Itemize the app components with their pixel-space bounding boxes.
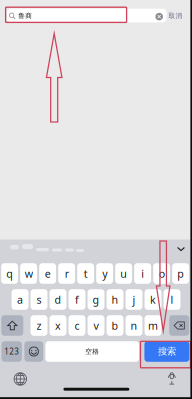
- button[interactable]: Clear search: [155, 13, 163, 20]
- button[interactable]: d: [49, 289, 66, 310]
- staticText: z: [36, 318, 41, 333]
- staticText: 取消: [168, 12, 182, 20]
- staticText: g: [92, 292, 99, 307]
- button[interactable]: u: [115, 263, 132, 284]
- staticText: n: [130, 318, 137, 333]
- staticText: r: [65, 266, 69, 281]
- staticText: 鲁商: [18, 12, 32, 20]
- button[interactable]: q: [1, 263, 18, 284]
- button[interactable]: h: [106, 289, 123, 310]
- staticText: m: [148, 318, 158, 333]
- staticText: x: [55, 318, 61, 333]
- button[interactable]: z: [31, 315, 47, 336]
- staticText: i: [141, 266, 144, 281]
- button[interactable]: [169, 315, 189, 336]
- button[interactable]: c: [68, 315, 85, 336]
- staticText: q: [6, 266, 13, 281]
- staticText: c: [74, 318, 79, 333]
- button[interactable]: 空格: [45, 341, 139, 362]
- button[interactable]: Hide keyboard: [177, 247, 185, 251]
- button[interactable]: r: [58, 263, 75, 284]
- button[interactable]: k: [145, 289, 161, 310]
- button[interactable]: [1, 315, 23, 336]
- button[interactable]: f: [68, 289, 85, 310]
- staticText: w: [25, 266, 33, 281]
- button[interactable]: x: [49, 315, 66, 336]
- staticText: l: [170, 292, 173, 307]
- staticText: p: [177, 266, 184, 281]
- staticText: 123: [4, 346, 19, 357]
- staticText: k: [150, 292, 156, 307]
- button[interactable]: n: [125, 315, 142, 336]
- button[interactable]: 取消: [168, 12, 182, 20]
- staticText: d: [54, 292, 61, 307]
- button[interactable]: l: [164, 289, 180, 310]
- staticText: y: [102, 266, 107, 281]
- staticText: o: [159, 266, 165, 281]
- button[interactable]: v: [87, 315, 104, 336]
- button[interactable]: m: [145, 315, 161, 336]
- button[interactable]: j: [125, 289, 142, 310]
- staticText: a: [17, 292, 23, 307]
- staticText: j: [132, 292, 135, 307]
- staticText: h: [111, 292, 118, 307]
- staticText: v: [93, 318, 98, 333]
- button[interactable]: y: [96, 263, 113, 284]
- button[interactable]: b: [106, 315, 123, 336]
- staticText: u: [120, 266, 127, 281]
- staticText: t: [84, 266, 88, 281]
- button[interactable]: o: [153, 263, 170, 284]
- staticText: 空格: [85, 347, 99, 356]
- button[interactable]: s: [31, 289, 47, 310]
- button[interactable]: t: [77, 263, 94, 284]
- button[interactable]: 搜索: [144, 341, 189, 362]
- button[interactable]: p: [172, 263, 189, 284]
- button[interactable]: w: [20, 263, 37, 284]
- button[interactable]: e: [39, 263, 56, 284]
- button[interactable]: a: [12, 289, 28, 310]
- staticText: e: [45, 266, 51, 281]
- button[interactable]: i: [134, 263, 151, 284]
- staticText: 搜索: [158, 346, 176, 357]
- button[interactable]: 123: [1, 341, 22, 362]
- button[interactable]: Switch keyboard: [14, 372, 27, 386]
- button[interactable]: g: [87, 289, 104, 310]
- staticText: f: [75, 292, 79, 307]
- staticText: s: [36, 292, 41, 307]
- button[interactable]: [24, 341, 43, 362]
- button[interactable]: Dictate: [165, 372, 178, 385]
- staticText: b: [111, 318, 118, 333]
